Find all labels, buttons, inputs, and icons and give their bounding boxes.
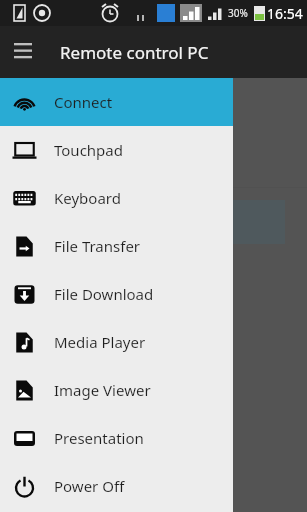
staticText: 30% — [228, 6, 248, 20]
button[interactable]: Presentation — [0, 414, 233, 462]
button[interactable]: Open navigation drawer — [0, 26, 46, 78]
button[interactable]: Connect — [0, 78, 233, 126]
button[interactable]: Image Viewer — [0, 366, 233, 414]
staticText: Connect — [54, 92, 113, 112]
staticText: Remote control PC — [60, 41, 209, 64]
staticText: Keyboard — [54, 188, 121, 208]
button[interactable]: Keyboard — [0, 174, 233, 222]
button[interactable]: File Transfer — [0, 222, 233, 270]
staticText: File Download — [54, 284, 154, 304]
staticText: Media Player — [54, 332, 146, 352]
button[interactable]: Touchpad — [0, 126, 233, 174]
staticText: Touchpad — [54, 140, 123, 160]
button[interactable]: Power Off — [0, 462, 233, 510]
staticText: File Transfer — [54, 236, 141, 256]
staticText: Presentation — [54, 428, 144, 448]
staticText: Power Off — [54, 476, 125, 496]
button[interactable]: Media Player — [0, 318, 233, 366]
staticText: Image Viewer — [54, 380, 151, 400]
staticText: 16:54 — [267, 4, 303, 23]
button[interactable]: File Download — [0, 270, 233, 318]
